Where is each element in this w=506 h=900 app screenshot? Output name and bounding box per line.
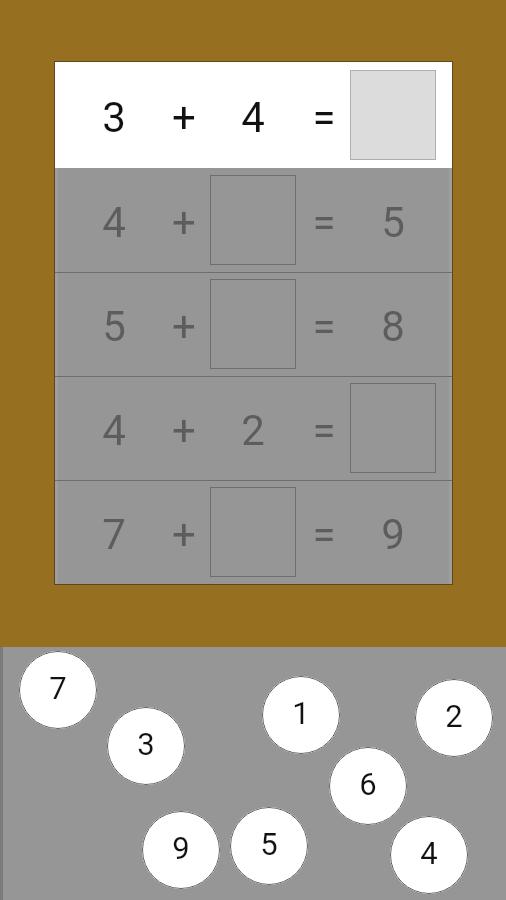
- staticText: 1: [292, 695, 310, 731]
- staticText: 2: [241, 406, 265, 455]
- staticText: 5: [260, 826, 278, 862]
- staticText: =: [312, 93, 336, 142]
- staticText: 7: [102, 510, 126, 559]
- staticText: 4: [420, 835, 438, 871]
- staticText: =: [312, 406, 336, 455]
- button[interactable]: Answer box: [350, 70, 436, 160]
- button[interactable]: 2: [415, 679, 493, 757]
- button[interactable]: 5: [55, 272, 452, 376]
- button[interactable]: 6: [329, 747, 407, 825]
- button[interactable]: 1: [262, 676, 340, 754]
- button[interactable]: 4: [390, 816, 468, 894]
- staticText: 8: [381, 302, 405, 351]
- staticText: +: [172, 198, 196, 247]
- button[interactable]: 5: [230, 807, 308, 885]
- staticText: 4: [102, 198, 126, 247]
- button[interactable]: Answer box: [210, 279, 296, 369]
- staticText: 3: [102, 93, 126, 142]
- button[interactable]: 9: [142, 811, 220, 889]
- staticText: 6: [359, 766, 377, 802]
- staticText: 5: [102, 302, 126, 351]
- staticText: 2: [445, 698, 463, 734]
- staticText: =: [312, 198, 336, 247]
- staticText: 4: [241, 93, 265, 142]
- staticText: +: [172, 302, 196, 351]
- button[interactable]: 4: [55, 376, 452, 480]
- button[interactable]: 7: [19, 651, 97, 729]
- button[interactable]: 3: [55, 62, 452, 168]
- button[interactable]: Answer box: [210, 487, 296, 577]
- button[interactable]: Answer box: [210, 175, 296, 265]
- staticText: 4: [102, 406, 126, 455]
- staticText: =: [312, 510, 336, 559]
- staticText: 9: [381, 510, 405, 559]
- staticText: 5: [381, 198, 405, 247]
- staticText: 3: [137, 726, 155, 762]
- button[interactable]: 3: [107, 707, 185, 785]
- staticText: 9: [172, 830, 190, 866]
- staticText: 7: [49, 670, 67, 706]
- button[interactable]: 7: [55, 480, 452, 584]
- staticText: +: [172, 406, 196, 455]
- staticText: +: [172, 510, 196, 559]
- button[interactable]: 4: [55, 168, 452, 272]
- staticText: +: [172, 93, 196, 142]
- button[interactable]: Answer box: [350, 383, 436, 473]
- staticText: =: [312, 302, 336, 351]
